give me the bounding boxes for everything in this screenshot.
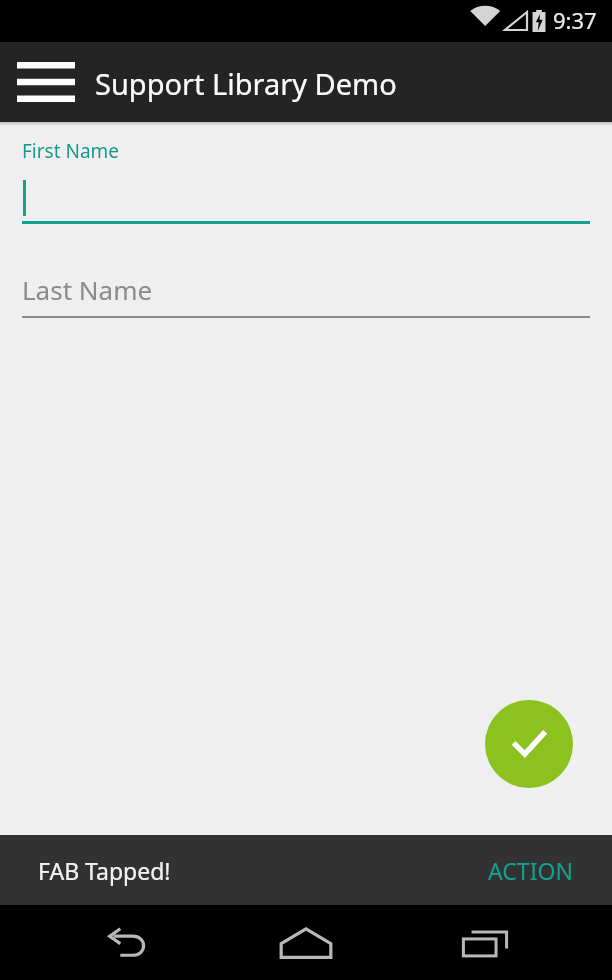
button[interactable]: Open navigation drawer xyxy=(10,52,82,112)
button[interactable]: Confirm xyxy=(485,700,573,788)
button[interactable]: Home xyxy=(266,905,346,980)
button[interactable] xyxy=(22,170,590,224)
button[interactable]: ACTION xyxy=(449,835,612,905)
button[interactable]: Recent apps xyxy=(445,905,525,980)
staticText: 9:37 xyxy=(553,5,597,35)
button[interactable]: Back xyxy=(87,905,167,980)
staticText: FAB Tapped! xyxy=(38,855,171,886)
staticText: First Name xyxy=(22,138,120,164)
staticText: ACTION xyxy=(488,855,573,886)
button[interactable]: Last Name xyxy=(22,266,590,318)
staticText: Last Name xyxy=(22,272,153,307)
staticText: Support Library Demo xyxy=(95,64,397,103)
